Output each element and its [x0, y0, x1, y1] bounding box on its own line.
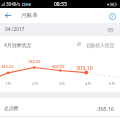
staticText: 月账单 [21, 12, 38, 19]
staticText: 343.23 [1, 64, 14, 69]
staticText: 04 /2017 [5, 26, 25, 33]
staticText: 切换收入情况 [86, 42, 115, 48]
button[interactable]: Pick month [107, 26, 114, 33]
staticText: 305.16 [76, 64, 93, 71]
staticText: 08:33 [54, 1, 67, 8]
staticText: 4月 [85, 81, 92, 86]
staticText: 3646/s [6, 1, 21, 7]
staticText: 604.52 [52, 64, 65, 69]
staticText: 3月 [59, 81, 66, 86]
staticText: 4月消费情况 [4, 42, 31, 49]
button[interactable]: Help [107, 11, 118, 22]
staticText: 2月 [32, 81, 39, 86]
staticText: ? [111, 13, 114, 20]
staticText: 5月 [109, 81, 116, 86]
button[interactable]: Back [0, 8, 15, 23]
button[interactable]: 04 /2017 [0, 23, 120, 36]
staticText: 744.92 [28, 59, 41, 64]
button[interactable]: 切换收入情况 [77, 41, 115, 47]
staticText: 1月 [5, 81, 12, 86]
staticText: -305.16 [96, 105, 114, 112]
button[interactable]: 总消费 [0, 98, 120, 117]
staticText: 总消费 [4, 105, 19, 111]
